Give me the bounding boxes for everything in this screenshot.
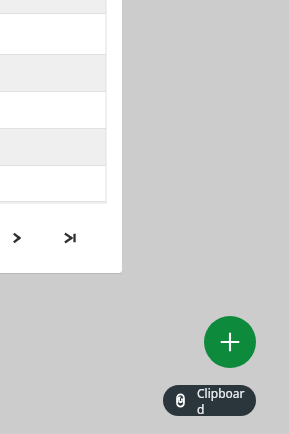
button[interactable] xyxy=(0,166,106,202)
button[interactable]: Last page xyxy=(54,221,88,255)
button[interactable] xyxy=(0,14,106,55)
button[interactable]: Create new xyxy=(204,316,256,368)
button[interactable]: Next page xyxy=(0,221,34,255)
button[interactable]: Clipboard xyxy=(163,385,256,416)
staticText: Clipboard xyxy=(197,385,246,416)
button[interactable] xyxy=(0,92,106,129)
button[interactable] xyxy=(0,0,106,14)
